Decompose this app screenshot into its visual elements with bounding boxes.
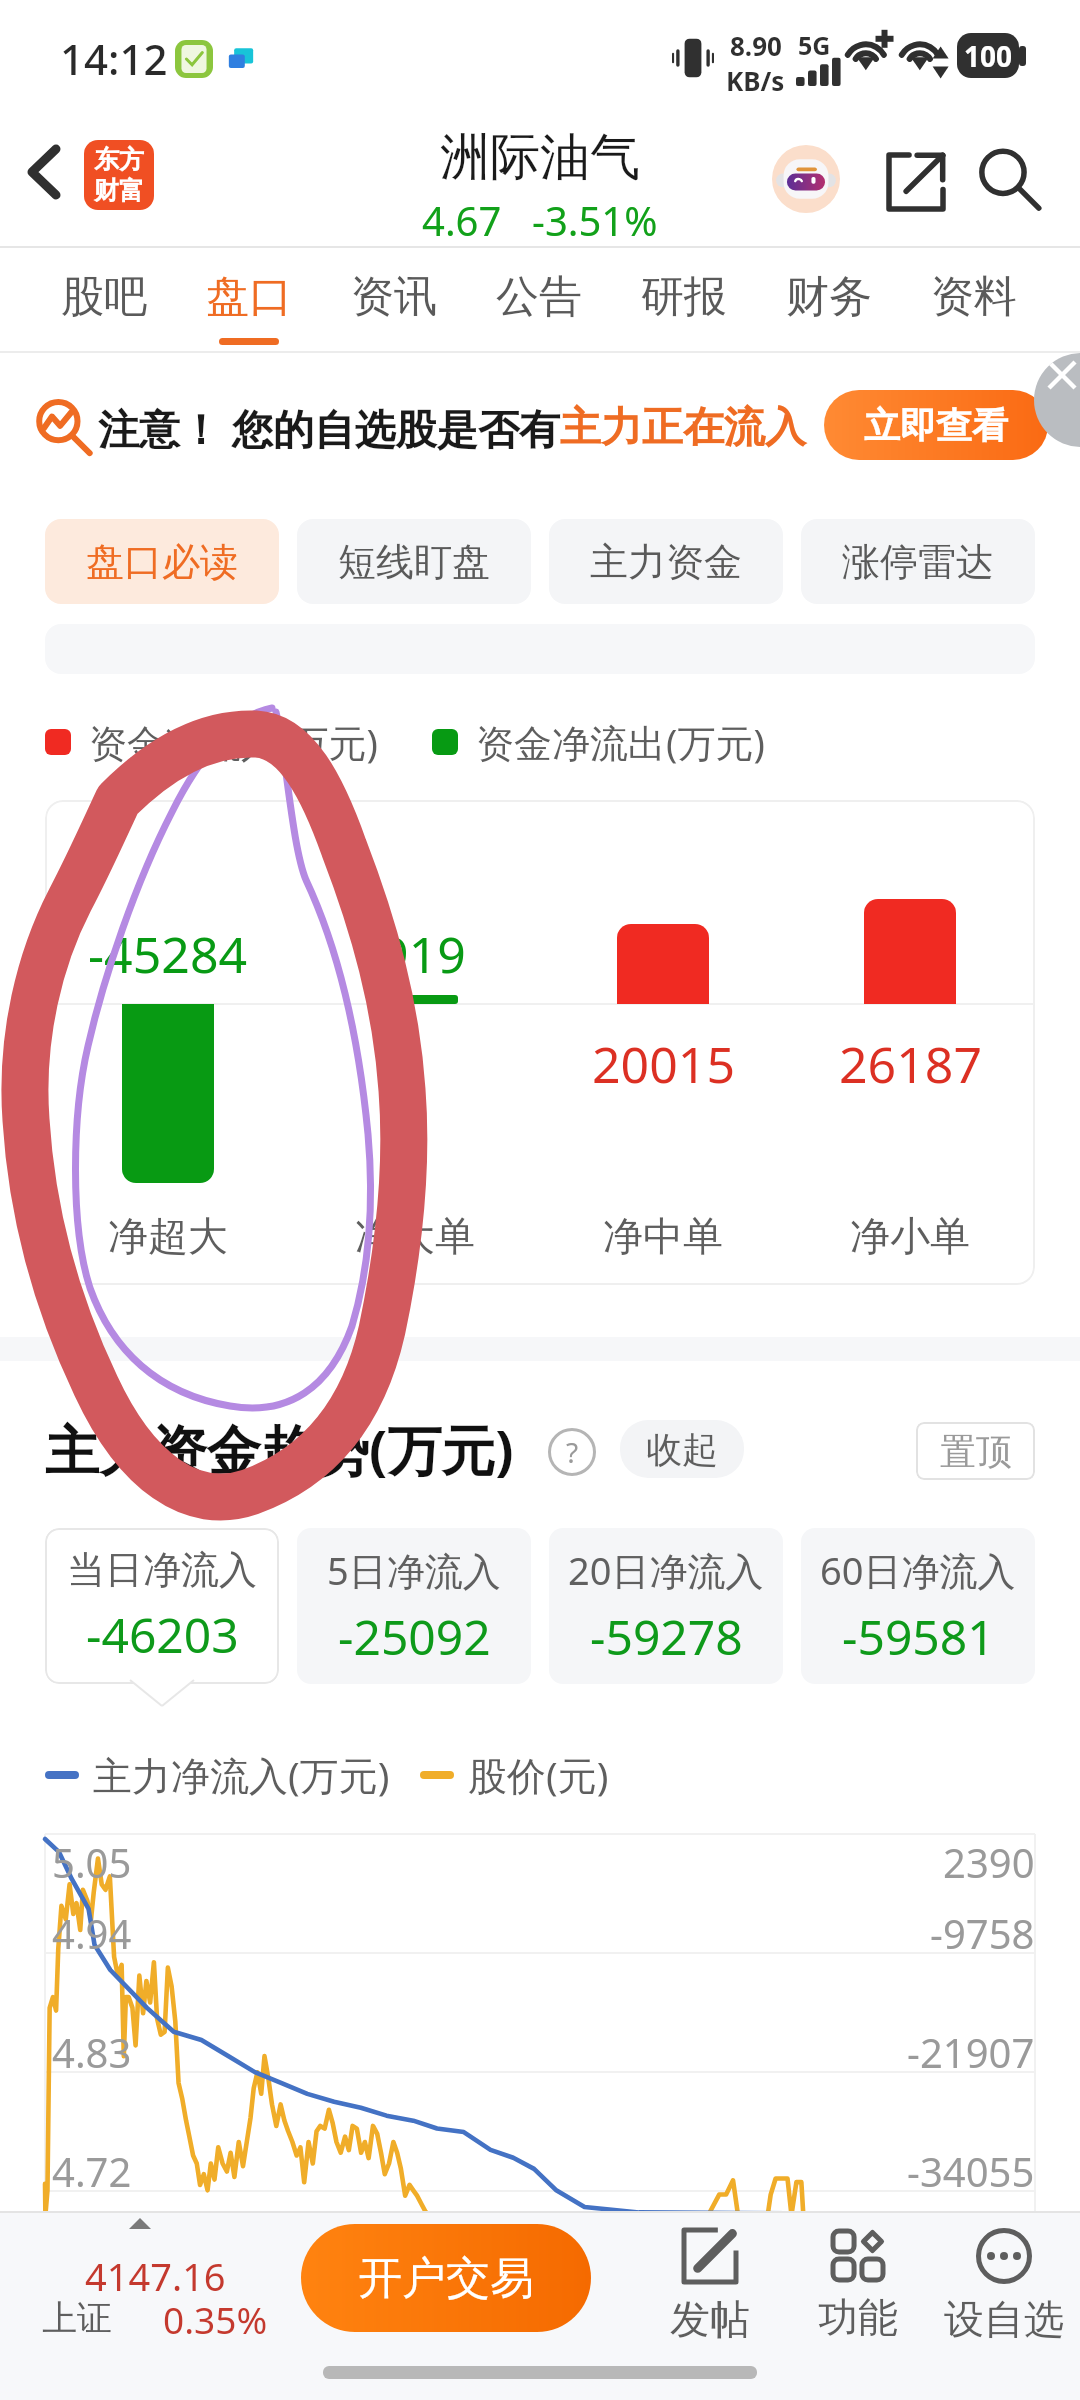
staticText: 资料 xyxy=(931,270,1017,324)
staticText: 财富 xyxy=(94,175,144,206)
staticText: 当日净流入 xyxy=(67,1546,257,1594)
staticText: 盘口 xyxy=(206,270,292,324)
button[interactable]: 5日净流入 xyxy=(297,1528,531,1684)
staticText: 100 xyxy=(964,37,1013,75)
staticText: 14:12 xyxy=(60,30,168,87)
staticText: 置顶 xyxy=(940,1429,1012,1474)
staticText: 发帖 xyxy=(670,2294,750,2344)
staticText: 财务 xyxy=(786,270,872,324)
staticText: -45284 xyxy=(88,920,248,980)
button[interactable]: 收起 xyxy=(620,1420,744,1478)
button[interactable]: Help xyxy=(548,1428,596,1476)
button[interactable]: Share xyxy=(866,132,966,232)
staticText: 功能 xyxy=(818,2292,898,2342)
button[interactable]: 涨停雷达 xyxy=(801,519,1035,604)
button[interactable]: 置顶 xyxy=(916,1422,1035,1480)
staticText: 26187 xyxy=(839,1030,982,1090)
staticText: 4.94 xyxy=(52,1906,132,1960)
staticText: -34055 xyxy=(907,2144,1035,2198)
button[interactable]: 资讯 xyxy=(324,262,464,354)
staticText: 20日净流入 xyxy=(568,1544,764,1596)
staticText: 4.83 xyxy=(52,2025,132,2079)
staticText: 注意！ 您的自选股是否有 xyxy=(98,400,560,456)
staticText: 开户交易 xyxy=(358,2251,534,2306)
staticText: 研报 xyxy=(641,270,727,324)
staticText: 资金净流出(万元) xyxy=(476,716,765,768)
button[interactable]: 盘口必读 xyxy=(45,519,279,604)
staticText: 净大单 xyxy=(355,1211,475,1261)
staticText: 洲际油气 xyxy=(440,126,640,189)
button[interactable]: 公告 xyxy=(469,262,609,354)
staticText: KB/s xyxy=(726,63,785,98)
button[interactable]: 短线盯盘 xyxy=(297,519,531,604)
button[interactable]: 功能 xyxy=(783,2228,933,2358)
staticText: -59278 xyxy=(590,1604,743,1669)
button[interactable]: 立即查看 xyxy=(824,390,1048,460)
button[interactable]: 设自选 xyxy=(929,2228,1079,2358)
staticText: -919 xyxy=(364,920,466,980)
button[interactable]: 主力资金 xyxy=(549,519,783,604)
button[interactable]: 60日净流入 xyxy=(801,1528,1035,1684)
staticText: 2390 xyxy=(943,1835,1035,1889)
staticText: 8.90 xyxy=(730,28,782,63)
staticText: 资金净流入(万元) xyxy=(89,716,378,768)
staticText: 涨停雷达 xyxy=(842,538,994,586)
button[interactable]: AI assistant xyxy=(772,145,840,213)
button[interactable]: 20日净流入 xyxy=(549,1528,783,1684)
staticText: 主力净流入(万元) xyxy=(93,1748,390,1801)
button[interactable]: 盘口 xyxy=(179,262,319,354)
staticText: 股吧 xyxy=(61,270,147,324)
staticText: -9758 xyxy=(930,1906,1035,1960)
staticText: 立即查看 xyxy=(864,403,1008,448)
button[interactable]: 当日净流入 xyxy=(45,1528,279,1684)
staticText: 20015 xyxy=(592,1030,735,1090)
button[interactable]: 股吧 xyxy=(34,262,174,354)
staticText: 5日净流入 xyxy=(327,1544,501,1596)
staticText: -59581 xyxy=(842,1604,995,1669)
button[interactable]: 研报 xyxy=(614,262,754,354)
button[interactable]: Back xyxy=(8,120,80,224)
staticText: 主力资金趋势(万元) xyxy=(45,1412,514,1486)
button[interactable]: 财务 xyxy=(759,262,899,354)
staticText: 上证 xyxy=(42,2296,112,2340)
staticText: ? xyxy=(566,1433,579,1471)
staticText: 设自选 xyxy=(944,2294,1064,2344)
staticText: 主力正在流入 xyxy=(560,402,806,454)
staticText: 资讯 xyxy=(351,270,437,324)
staticText: 净小单 xyxy=(850,1211,970,1261)
staticText: 5G xyxy=(798,28,831,62)
staticText: 0.35% xyxy=(163,2294,268,2344)
button[interactable]: 开户交易 xyxy=(301,2224,591,2332)
button[interactable]: Search xyxy=(962,132,1058,228)
staticText: 净超大 xyxy=(108,1211,228,1261)
staticText: 公告 xyxy=(496,270,582,324)
staticText: 4.72 xyxy=(52,2144,132,2198)
staticText: 盘口必读 xyxy=(86,538,238,586)
staticText: 东方 xyxy=(94,144,144,175)
staticText: 短线盯盘 xyxy=(338,538,490,586)
staticText: -46203 xyxy=(86,1602,239,1667)
button[interactable]: 4147.16 xyxy=(22,2232,272,2344)
button[interactable]: Close banner xyxy=(1034,353,1080,447)
button[interactable]: 资料 xyxy=(904,262,1044,354)
staticText: -25092 xyxy=(338,1604,491,1669)
staticText: 4.67 xyxy=(422,193,502,247)
staticText: 60日净流入 xyxy=(820,1544,1016,1596)
staticText: 4147.16 xyxy=(85,2250,226,2302)
button[interactable]: 东方 xyxy=(84,140,154,210)
button[interactable]: 发帖 xyxy=(635,2228,785,2358)
staticText: 净中单 xyxy=(603,1211,723,1261)
staticText: 主力资金 xyxy=(590,538,742,586)
staticText: 收起 xyxy=(646,1427,718,1472)
staticText: -3.51% xyxy=(532,193,658,247)
staticText: -21907 xyxy=(907,2025,1035,2079)
staticText: 股价(元) xyxy=(468,1748,609,1801)
staticText: 5.05 xyxy=(52,1835,132,1889)
